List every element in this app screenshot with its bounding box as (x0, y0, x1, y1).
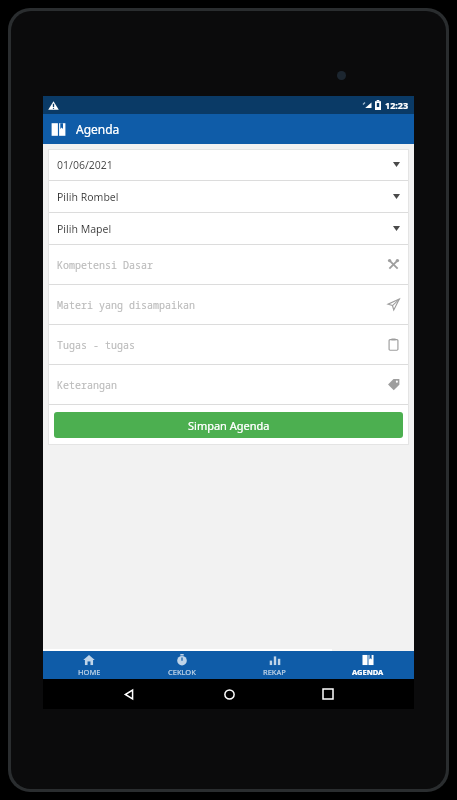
button[interactable]: Tugas - tugas (48, 325, 409, 364)
button[interactable]: Back (115, 680, 143, 708)
staticText: Tugas - tugas (57, 338, 135, 352)
staticText: Kompetensi Dasar (57, 258, 153, 272)
button[interactable]: 01/06/2021 (48, 149, 409, 180)
button[interactable]: HOME (43, 654, 135, 677)
button[interactable]: AGENDA (321, 654, 414, 677)
button[interactable]: Recent apps (314, 680, 342, 708)
staticText: AGENDA (352, 667, 384, 677)
staticText: 12:23 (385, 99, 409, 111)
staticText: REKAP (263, 667, 286, 677)
button[interactable]: Home (215, 680, 243, 708)
button[interactable]: Simpan Agenda (54, 412, 403, 438)
staticText: CEKLOK (168, 667, 196, 677)
button[interactable]: CEKLOK (135, 654, 228, 677)
staticText: Materi yang disampaikan (57, 298, 195, 312)
staticText: Pilih Mapel (57, 222, 112, 236)
staticText: 01/06/2021 (57, 158, 113, 172)
staticText: HOME (78, 667, 101, 677)
staticText: Keterangan (57, 378, 117, 392)
button[interactable]: REKAP (228, 654, 321, 677)
staticText: Agenda (76, 121, 120, 137)
staticText: Simpan Agenda (188, 418, 270, 433)
button[interactable]: Pilih Mapel (48, 213, 409, 244)
button[interactable]: Pilih Rombel (48, 181, 409, 212)
button[interactable]: Kompetensi Dasar (48, 245, 409, 284)
button[interactable]: Materi yang disampaikan (48, 285, 409, 324)
staticText: Pilih Rombel (57, 190, 119, 204)
button[interactable]: Keterangan (48, 365, 409, 404)
